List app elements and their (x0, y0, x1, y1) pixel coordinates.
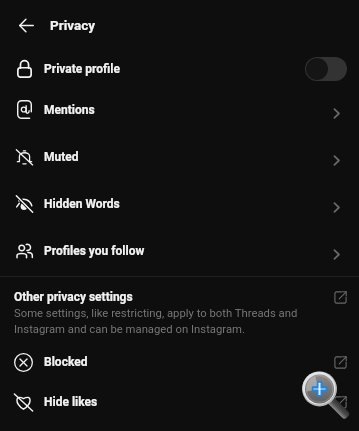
staticText: Some settings, like restricting, apply t… (14, 307, 306, 336)
button[interactable]: Back (12, 11, 40, 39)
staticText: Blocked (44, 355, 88, 369)
staticText: Muted (44, 150, 79, 164)
button[interactable]: Other privacy settings (0, 277, 359, 340)
button[interactable]: Private profile (0, 51, 359, 86)
button[interactable]: Private profile toggle (305, 57, 347, 81)
staticText: Profiles you follow (44, 244, 145, 258)
button[interactable]: Hidden Words (0, 180, 359, 227)
staticText: Hide likes (44, 395, 98, 409)
staticText: Mentions (44, 103, 95, 117)
button[interactable]: Muted (0, 133, 359, 180)
button[interactable]: Blocked (0, 342, 359, 382)
staticText: Privacy (50, 17, 96, 33)
staticText: Hidden Words (44, 197, 120, 211)
staticText: Private profile (44, 62, 120, 76)
button[interactable]: Profiles you follow (0, 227, 359, 274)
staticText: Other privacy settings (14, 290, 133, 304)
button[interactable]: Hide likes (0, 382, 359, 422)
button[interactable]: Mentions (0, 86, 359, 133)
